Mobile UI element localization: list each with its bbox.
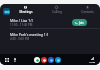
staticText: Calling bbox=[52, 10, 62, 14]
button[interactable]: App bbox=[48, 57, 54, 63]
button[interactable]: Contacts bbox=[76, 5, 99, 17]
button[interactable]: Meetings bbox=[14, 5, 37, 17]
staticText: Mike Park's meeting 1:1 bbox=[10, 32, 49, 37]
staticText: Contacts bbox=[81, 10, 94, 14]
staticText: Meetings bbox=[19, 10, 33, 14]
button[interactable]: Join bbox=[72, 19, 87, 26]
button[interactable]: App bbox=[55, 57, 61, 63]
staticText: 11:00 - 11:45 PM bbox=[10, 23, 33, 27]
button[interactable]: Webex bbox=[3, 8, 10, 15]
staticText: Mike / Lisa 1:1 bbox=[10, 18, 33, 23]
button[interactable]: Mike / Lisa 1:1 bbox=[0, 16, 100, 28]
button[interactable]: Assistant bbox=[12, 57, 18, 63]
staticText: 12:30 bbox=[89, 60, 96, 63]
staticText: 4:30 - 5:00 PM bbox=[10, 37, 30, 41]
button[interactable]: Calling bbox=[45, 5, 68, 17]
button[interactable]: App bbox=[34, 57, 40, 63]
button[interactable]: App bbox=[41, 57, 47, 63]
staticText: Join bbox=[79, 21, 85, 25]
button[interactable]: Apps bbox=[4, 57, 10, 63]
button[interactable]: Mike Park's meeting 1:1 bbox=[0, 30, 100, 42]
